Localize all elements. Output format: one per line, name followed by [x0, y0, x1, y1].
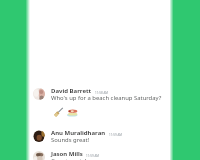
- button[interactable]: David Barrett: [51, 87, 109, 95]
- staticText: David Barrett: [51, 87, 92, 95]
- button[interactable]: [54, 107, 78, 117]
- staticText: Who's up for a beach cleanup Saturday?: [51, 94, 162, 102]
- staticText: Sounds great!: [51, 136, 90, 144]
- staticText: Jason Mills: [51, 150, 83, 158]
- staticText: 11:59 AM: [86, 154, 100, 158]
- button[interactable]: Jason Mills: [51, 150, 100, 158]
- staticText: 11:58 AM: [95, 91, 109, 95]
- button[interactable]: [33, 130, 45, 142]
- button[interactable]: [33, 88, 45, 100]
- staticText: 11:59 AM: [109, 133, 123, 137]
- button[interactable]: Anu Muralidharan: [51, 129, 123, 137]
- staticText: Anu Muralidharan: [51, 129, 106, 137]
- button[interactable]: [33, 151, 45, 160]
- staticText: Count me in!: [51, 157, 87, 160]
